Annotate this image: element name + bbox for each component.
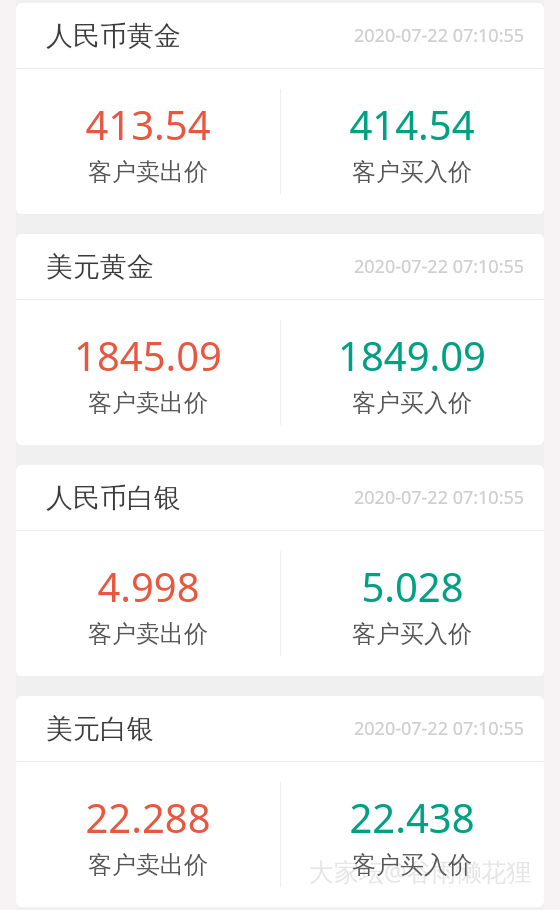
staticText: 2020-07-22 07:10:55 — [354, 716, 525, 741]
button[interactable]: 22.288 — [16, 762, 280, 907]
staticText: 1849.09 — [338, 328, 486, 382]
staticText: 客户买入价 — [352, 388, 472, 418]
staticText: 美元黄金 — [46, 250, 154, 284]
staticText: 人民币白银 — [46, 481, 181, 515]
button[interactable]: 1849.09 — [280, 300, 544, 445]
staticText: 美元白银 — [46, 712, 154, 746]
staticText: 客户买入价 — [352, 850, 472, 880]
staticText: 2020-07-22 07:10:55 — [354, 254, 525, 279]
staticText: 客户买入价 — [352, 157, 472, 187]
button[interactable]: 1845.09 — [16, 300, 280, 445]
staticText: 人民币黄金 — [46, 19, 181, 53]
button[interactable]: 美元黄金 — [16, 234, 544, 445]
staticText: 22.288 — [85, 790, 211, 844]
staticText: 客户买入价 — [352, 619, 472, 649]
staticText: 2020-07-22 07:10:55 — [354, 485, 525, 510]
staticText: 客户卖出价 — [88, 850, 208, 880]
button[interactable]: 413.54 — [16, 69, 280, 214]
button[interactable]: 5.028 — [280, 531, 544, 676]
staticText: 2020-07-22 07:10:55 — [354, 23, 525, 48]
button[interactable]: 美元白银 — [16, 696, 544, 907]
button[interactable]: 414.54 — [280, 69, 544, 214]
staticText: 客户卖出价 — [88, 388, 208, 418]
staticText: 客户卖出价 — [88, 157, 208, 187]
staticText: 413.54 — [85, 97, 211, 151]
staticText: 5.028 — [361, 559, 464, 613]
staticText: 客户卖出价 — [88, 619, 208, 649]
button[interactable]: 22.438 — [280, 762, 544, 907]
button[interactable]: 人民币黄金 — [16, 3, 544, 214]
staticText: 22.438 — [349, 790, 475, 844]
staticText: 4.998 — [97, 559, 200, 613]
staticText: 414.54 — [349, 97, 475, 151]
staticText: 1845.09 — [74, 328, 222, 382]
button[interactable]: 人民币白银 — [16, 465, 544, 676]
staticText: 大家坛@谷雨懒花狸 — [309, 854, 532, 888]
button[interactable]: 4.998 — [16, 531, 280, 676]
